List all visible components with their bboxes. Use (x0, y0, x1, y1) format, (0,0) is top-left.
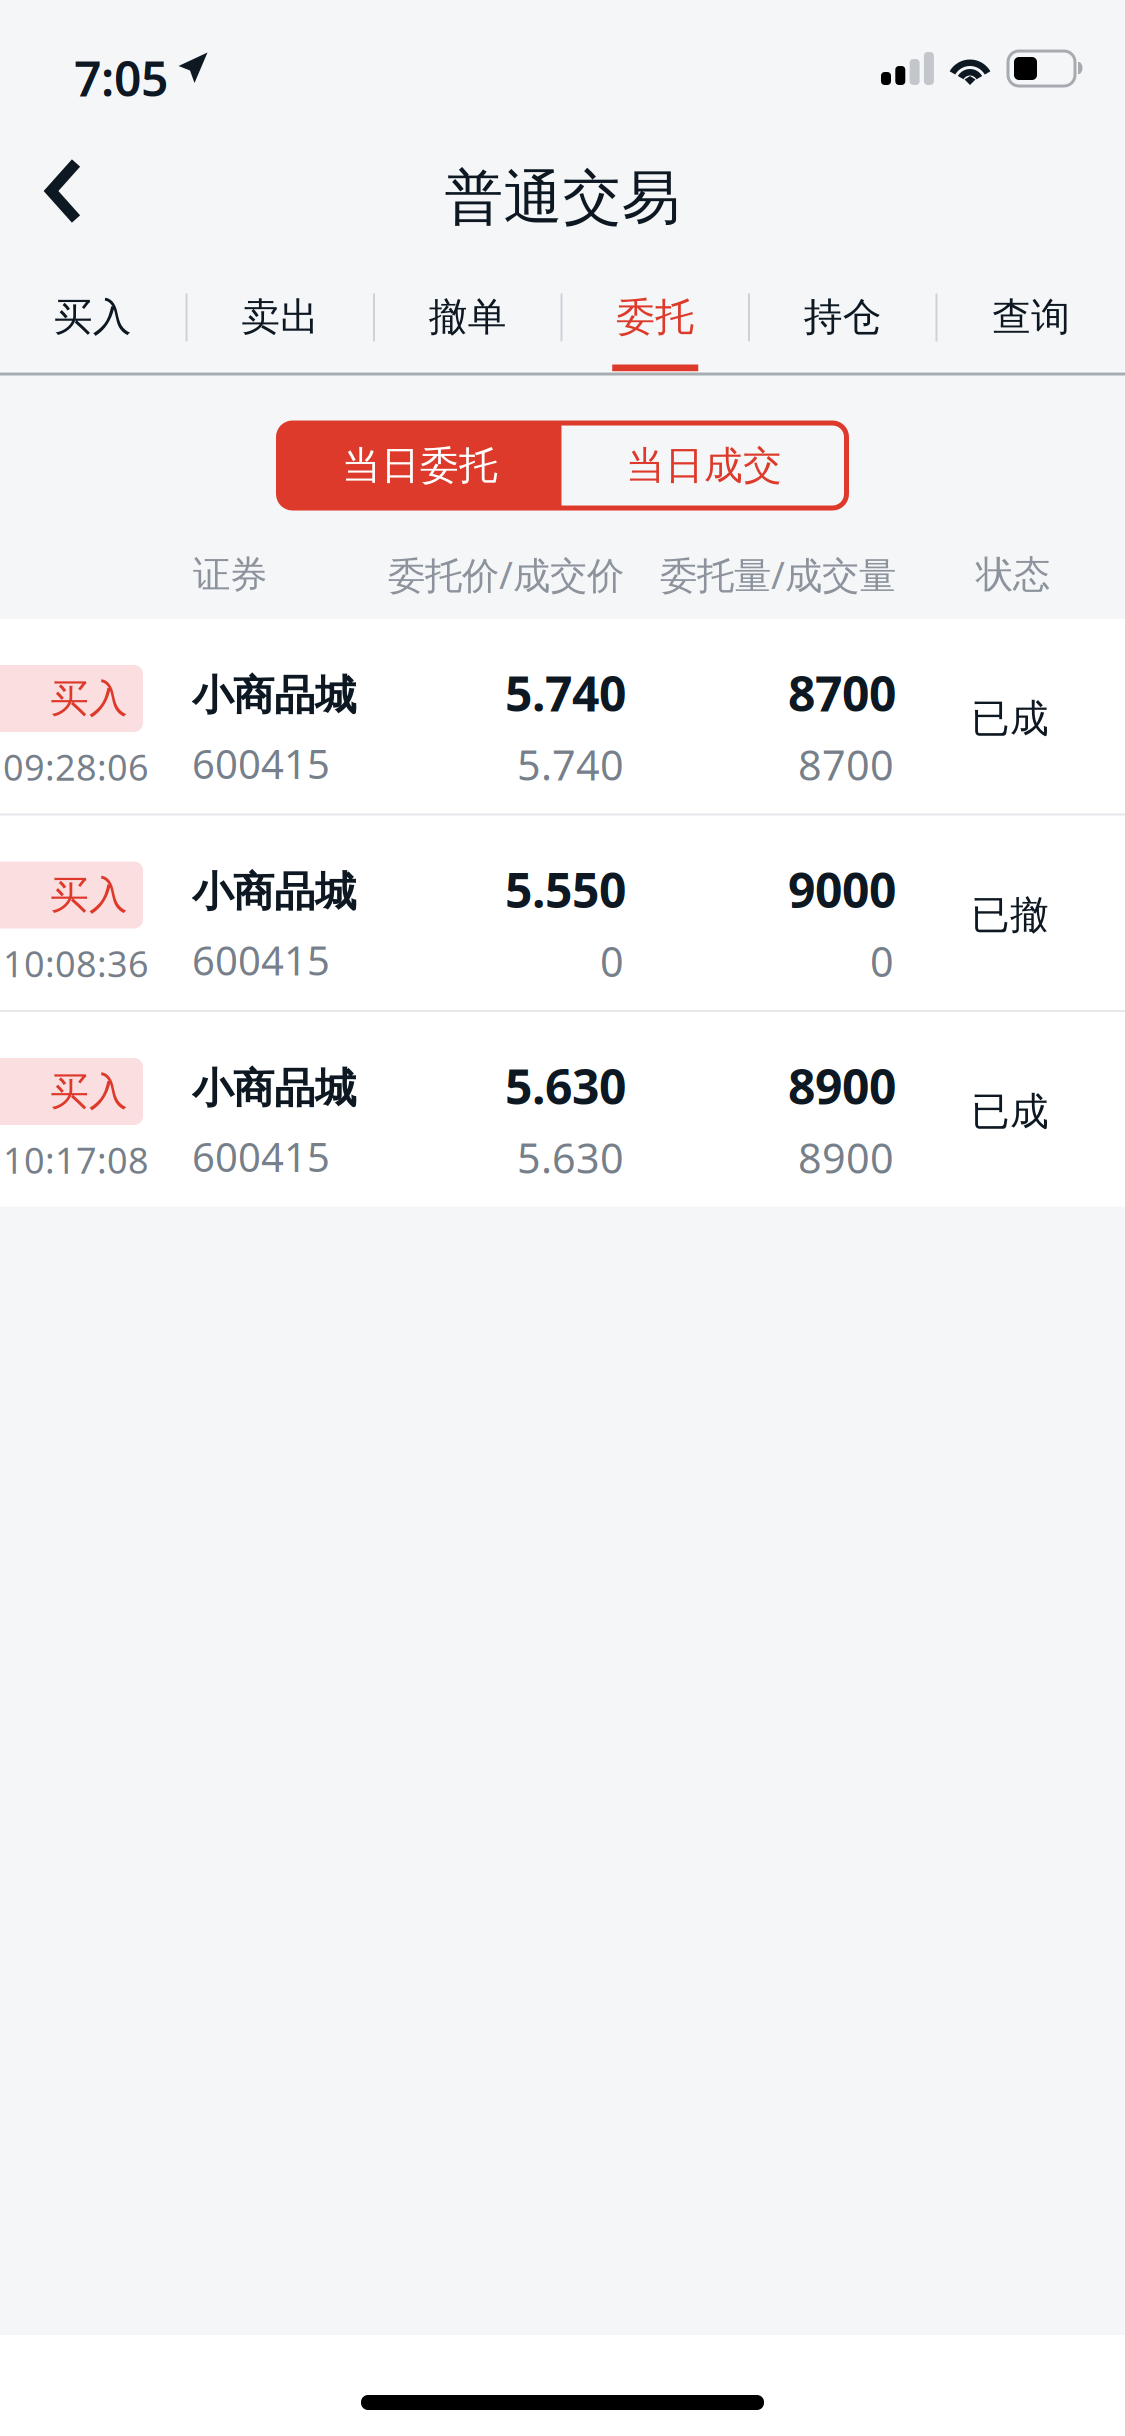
staticText: 8900 (788, 1054, 896, 1118)
staticText: 买入 (50, 871, 128, 919)
staticText: 委托量/成交量 (660, 550, 896, 599)
staticText: 买入 (50, 1068, 128, 1115)
button[interactable]: 委托 (562, 263, 748, 371)
staticText: 7:05 (74, 46, 168, 110)
staticText: 600415 (192, 1130, 330, 1183)
staticText: 撤单 (429, 293, 507, 341)
staticText: 小商品城 (192, 670, 356, 721)
staticText: 8900 (798, 1130, 894, 1185)
staticText: 5.630 (505, 1054, 626, 1118)
staticText: 委托 (616, 293, 694, 341)
staticText: 0 (870, 933, 894, 988)
staticText: 买入 (50, 675, 128, 722)
staticText: 600415 (192, 933, 330, 987)
button[interactable]: Back (0, 132, 128, 264)
staticText: 5.740 (517, 737, 624, 792)
staticText: 已成 (971, 695, 1049, 742)
staticText: 5.630 (517, 1130, 624, 1185)
staticText: 卖出 (241, 293, 319, 341)
staticText: 证券 (193, 552, 267, 597)
button[interactable]: 持仓 (750, 263, 935, 371)
button[interactable]: 撤单 (375, 263, 560, 371)
staticText: 当日成交 (626, 442, 782, 489)
button[interactable]: 买入 (0, 815, 1125, 1010)
staticText: 普通交易 (444, 162, 680, 234)
staticText: 5.740 (505, 661, 626, 725)
staticText: 8700 (798, 737, 894, 792)
button[interactable]: 查询 (937, 263, 1125, 371)
staticText: 600415 (192, 737, 330, 790)
staticText: 8700 (788, 661, 896, 725)
staticText: 已成 (971, 1088, 1049, 1135)
button[interactable]: 卖出 (187, 263, 373, 371)
button[interactable]: 买入 (0, 1012, 1125, 1206)
staticText: 0 (600, 933, 624, 988)
staticText: 9000 (788, 857, 896, 921)
button[interactable]: 买入 (0, 263, 185, 371)
staticText: 5.550 (505, 857, 626, 921)
staticText: 当日委托 (342, 442, 498, 489)
staticText: 10:17:08 (3, 1136, 149, 1184)
staticText: 委托价/成交价 (388, 550, 624, 599)
staticText: 状态 (976, 552, 1050, 597)
button[interactable]: 当日委托 (278, 423, 561, 508)
staticText: 查询 (992, 293, 1070, 341)
staticText: 买入 (54, 293, 132, 341)
staticText: 小商品城 (192, 866, 356, 917)
button[interactable]: 买入 (0, 619, 1125, 813)
staticText: 持仓 (804, 293, 882, 341)
button[interactable]: 当日成交 (561, 423, 846, 508)
staticText: 09:28:06 (3, 743, 149, 791)
staticText: 10:08:36 (3, 939, 149, 987)
staticText: 已撤 (971, 891, 1049, 939)
staticText: 小商品城 (192, 1063, 356, 1114)
